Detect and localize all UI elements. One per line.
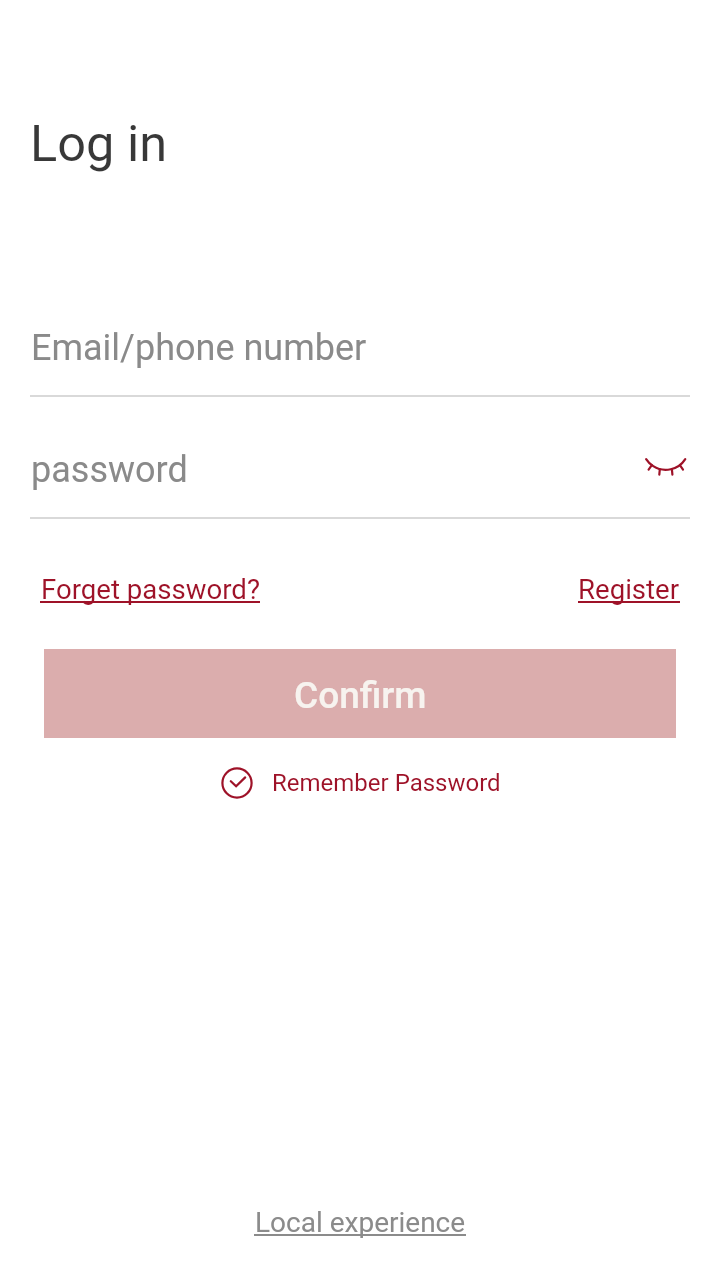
staticText: Email/phone number: [31, 327, 367, 369]
button[interactable]: Remember Password: [218, 759, 501, 807]
staticText: Log in: [30, 114, 168, 173]
staticText: Register: [578, 573, 680, 605]
staticText: Forget password?: [41, 573, 260, 605]
button[interactable]: Email/phone number: [0, 302, 720, 394]
button[interactable]: Register: [578, 568, 680, 608]
button[interactable]: Local experience: [254, 1201, 466, 1241]
button[interactable]: Forget password?: [40, 568, 260, 608]
staticText: Local experience: [255, 1206, 466, 1239]
button[interactable]: Show password: [634, 430, 698, 504]
button[interactable]: password: [0, 416, 720, 523]
staticText: Confirm: [294, 674, 427, 717]
staticText: password: [31, 449, 188, 491]
button[interactable]: Confirm: [44, 649, 676, 738]
staticText: Remember Password: [272, 769, 501, 797]
